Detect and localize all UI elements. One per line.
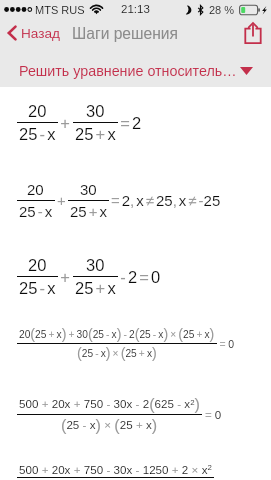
staticText: 28 % <box>209 4 235 16</box>
staticText: = 0 <box>217 338 235 350</box>
button[interactable]: Решить уравнение относитель… <box>0 55 271 87</box>
staticText: (25 - x) × (25 + x) <box>77 345 157 361</box>
staticText: Шаги решения <box>72 25 178 42</box>
staticText: - 2 = 0 <box>118 268 161 286</box>
staticText: (25 - x) × (25 + x) <box>61 416 158 434</box>
button[interactable]: Назад <box>4 20 63 46</box>
staticText: 20 <box>27 181 44 198</box>
staticText: Назад <box>21 26 60 41</box>
staticText: 25 - x <box>19 203 53 220</box>
staticText: 25 + x <box>75 125 116 143</box>
staticText: = 2 <box>118 114 142 132</box>
staticText: 30 <box>86 102 105 120</box>
staticText: 25 + x <box>70 203 107 220</box>
staticText: 25 - x <box>19 125 56 143</box>
staticText: Решить уравнение относитель… <box>19 63 237 79</box>
staticText: = 0 <box>202 408 222 421</box>
staticText: 25 + x <box>75 279 116 297</box>
staticText: 30 <box>80 181 97 198</box>
staticText: 20 <box>28 256 47 274</box>
staticText: 30 <box>86 256 105 274</box>
staticText: + <box>55 192 68 209</box>
staticText: 500 + 20x + 750 - 30x - 1250 + 2 × x2 <box>19 463 212 476</box>
staticText: + <box>58 114 73 132</box>
staticText: = 2, x ≠ 25, x ≠ -25 <box>109 192 221 209</box>
button[interactable]: Share <box>239 19 267 47</box>
staticText: 21:13 <box>121 3 150 16</box>
staticText: + <box>58 268 73 286</box>
staticText: 500 + 20x + 750 - 30x - 2(625 - x2) <box>19 395 200 413</box>
staticText: 20(25 + x) + 30(25 - x) - 2(25 - x) × (2… <box>19 326 215 342</box>
staticText: MTS RUS <box>35 4 85 16</box>
staticText: 20 <box>28 102 47 120</box>
staticText: 25 - x <box>19 279 56 297</box>
